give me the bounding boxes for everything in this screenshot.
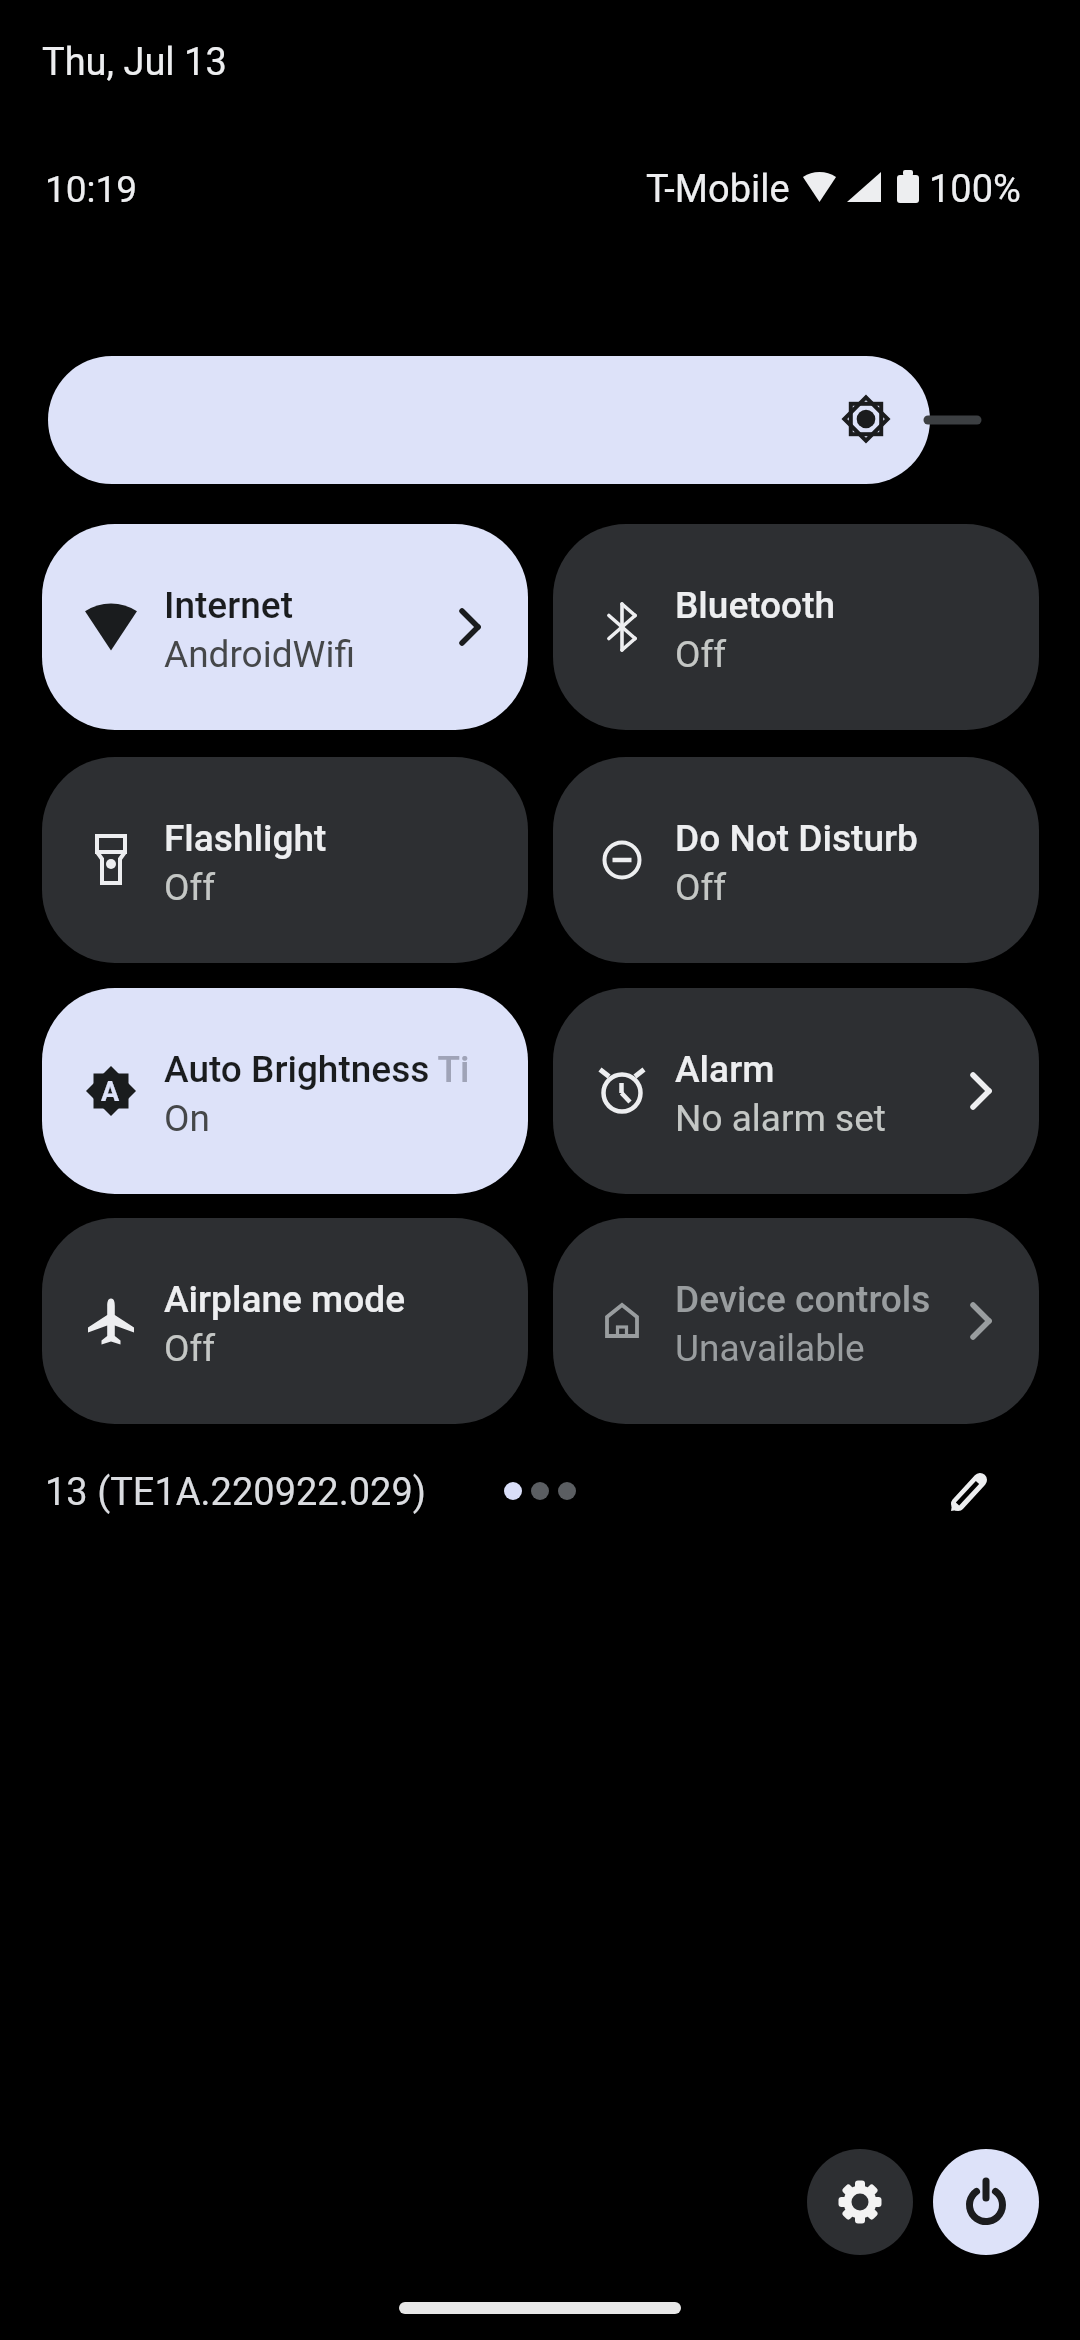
staticText: Bluetooth xyxy=(675,584,836,627)
button[interactable] xyxy=(807,2149,913,2255)
staticText: On xyxy=(164,1097,210,1140)
button[interactable]: Airplane mode xyxy=(42,1218,528,1424)
button[interactable]: Auto Brightness Ti xyxy=(42,988,528,1194)
button[interactable]: Alarm xyxy=(553,988,1039,1194)
staticText: Off xyxy=(675,633,727,676)
button[interactable] xyxy=(933,2149,1039,2255)
button[interactable] xyxy=(48,356,930,484)
staticText: Flashlight xyxy=(164,817,327,860)
staticText: Auto Brightness Ti xyxy=(164,1048,470,1091)
staticText: Airplane mode xyxy=(164,1278,406,1321)
staticText: Off xyxy=(675,866,727,909)
staticText: AndroidWifi xyxy=(164,633,355,676)
staticText: 13 (TE1A.220922.029) xyxy=(45,1470,427,1515)
staticText: Off xyxy=(164,866,216,909)
staticText: Unavailable xyxy=(675,1327,865,1370)
staticText: Off xyxy=(164,1327,216,1370)
staticText: Do Not Disturb xyxy=(675,817,918,860)
button[interactable] xyxy=(935,1457,1005,1527)
staticText: A xyxy=(101,1076,120,1108)
staticText: Alarm xyxy=(675,1048,775,1091)
staticText: Device controls xyxy=(675,1278,931,1321)
staticText: 10:19 xyxy=(45,168,138,211)
staticText: 100% xyxy=(929,167,1021,212)
staticText: No alarm set xyxy=(675,1097,886,1140)
button[interactable]: Flashlight xyxy=(42,757,528,963)
button[interactable]: Device controls xyxy=(553,1218,1039,1424)
staticText: Internet xyxy=(164,584,293,627)
button[interactable]: Internet xyxy=(42,524,528,730)
button[interactable]: Do Not Disturb xyxy=(553,757,1039,963)
staticText: Thu, Jul 13 xyxy=(42,40,227,85)
staticText: T-Mobile xyxy=(646,167,790,212)
button[interactable]: Bluetooth xyxy=(553,524,1039,730)
